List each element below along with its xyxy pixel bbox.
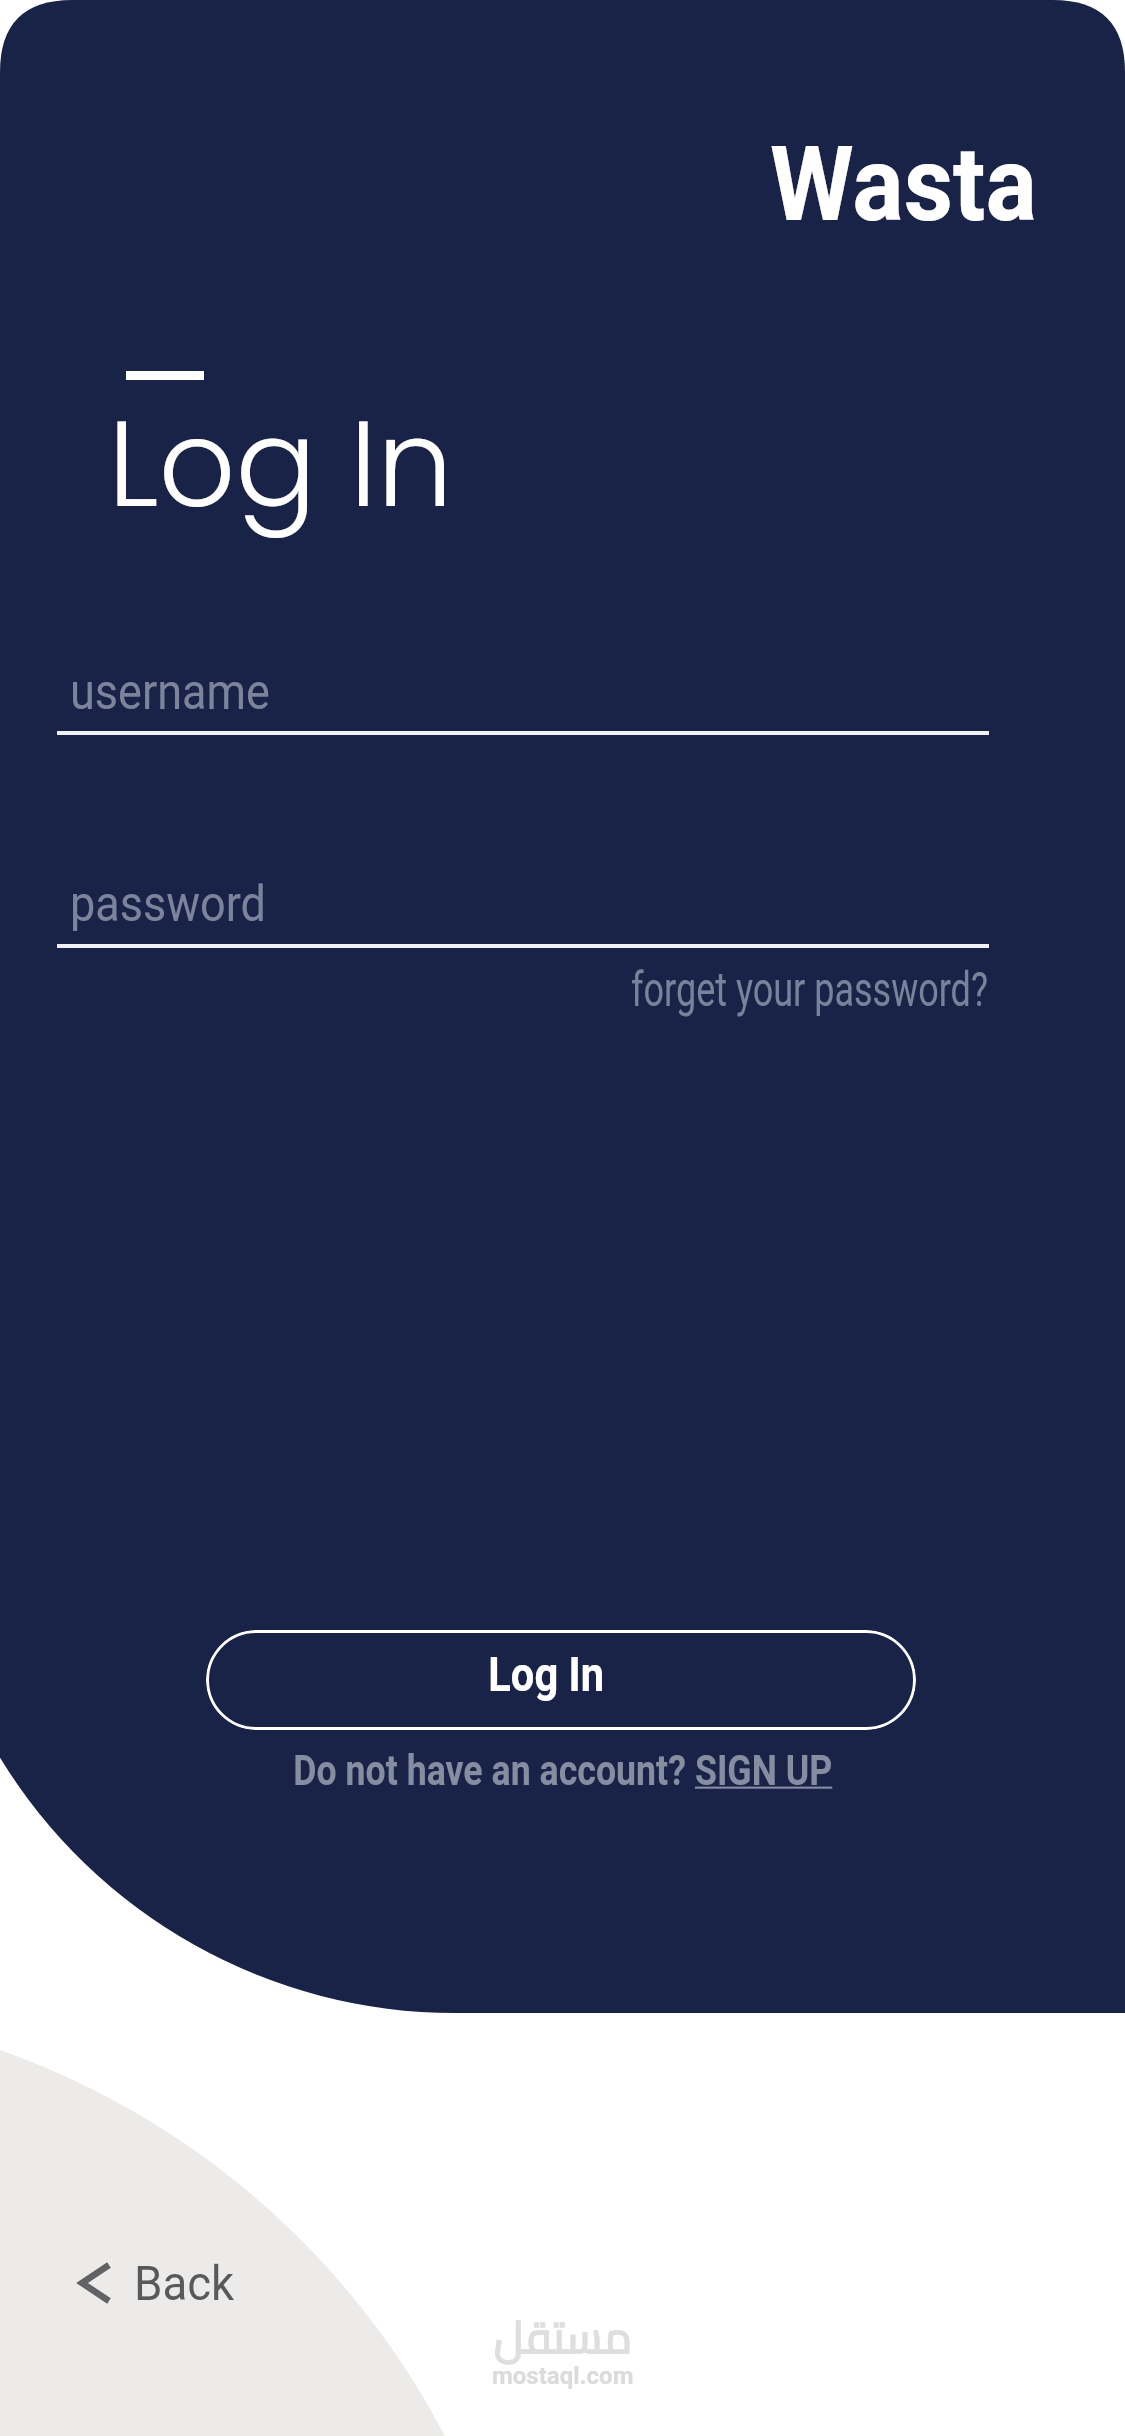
button[interactable]: Back xyxy=(72,2247,240,2319)
staticText: username xyxy=(70,663,270,722)
staticText: Wasta xyxy=(770,124,1037,245)
staticText: password xyxy=(70,875,266,934)
staticText: mostaql.com xyxy=(492,2362,634,2390)
button[interactable]: SIGN UP xyxy=(695,1745,833,1795)
staticText: Back xyxy=(134,2255,235,2311)
button[interactable]: Log In xyxy=(206,1630,916,1730)
staticText: Log In xyxy=(488,1646,605,1703)
button[interactable]: forget your password? xyxy=(631,961,988,1017)
staticText: Do not have an account? xyxy=(293,1745,695,1795)
staticText: Log In xyxy=(108,380,453,548)
button[interactable]: password xyxy=(57,858,989,948)
staticText: مستقل xyxy=(494,2296,632,2378)
button[interactable]: username xyxy=(57,645,989,735)
